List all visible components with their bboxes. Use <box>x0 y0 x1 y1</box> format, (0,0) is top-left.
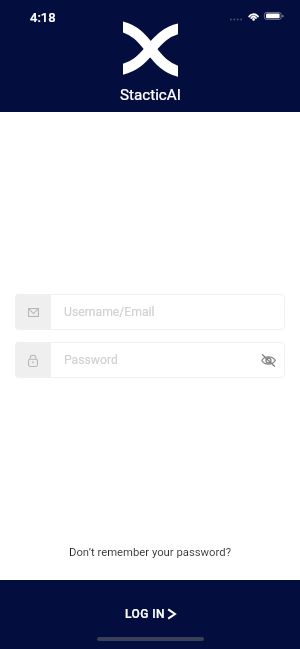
button[interactable]: Show password <box>251 342 285 378</box>
button[interactable]: Password <box>15 342 285 378</box>
staticText: StacticAI <box>120 86 181 104</box>
button[interactable]: Username/Email <box>15 294 285 330</box>
button[interactable]: LOG IN <box>0 580 300 649</box>
staticText: 4:18 <box>30 10 56 25</box>
staticText: LOG IN <box>125 607 165 621</box>
staticText: Password <box>64 353 118 367</box>
button[interactable]: Don’t remember your password? <box>61 542 239 563</box>
staticText: Username/Email <box>64 305 155 319</box>
